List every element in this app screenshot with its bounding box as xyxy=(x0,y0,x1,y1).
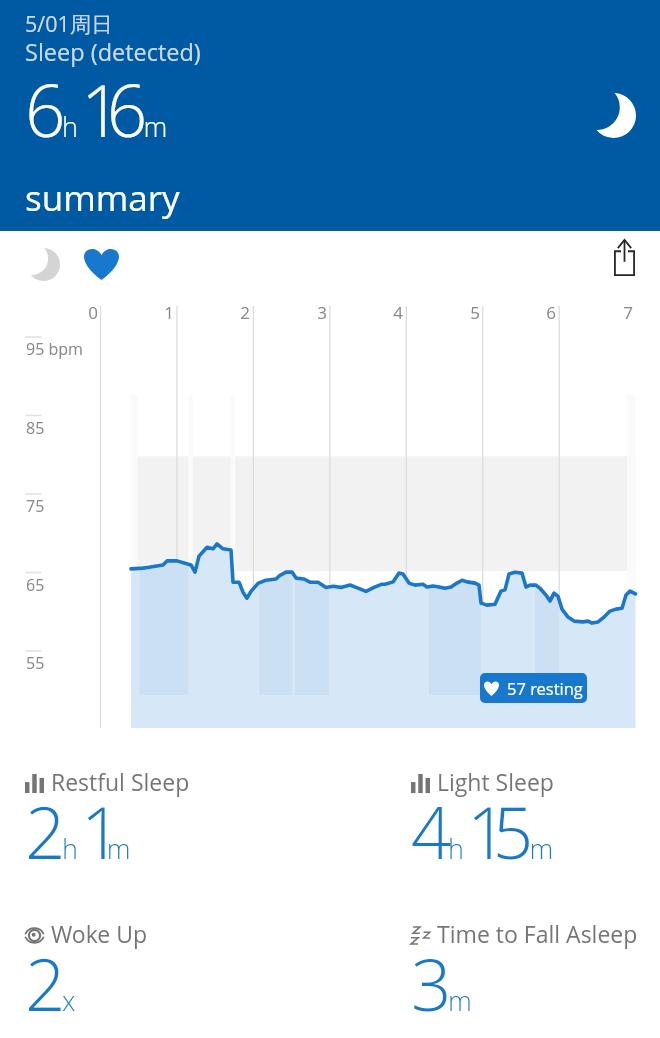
staticText: 0 xyxy=(72,301,98,324)
staticText: 55 xyxy=(26,652,45,674)
staticText: Woke Up xyxy=(51,918,148,949)
staticText: 3m xyxy=(411,935,472,1032)
button[interactable]: 57 resting xyxy=(480,673,587,703)
staticText: 65 xyxy=(26,574,45,596)
staticText: 3 xyxy=(301,301,327,324)
staticText: 6h 16m xyxy=(25,61,168,158)
staticText: 75 xyxy=(26,495,45,517)
staticText: 95 bpm xyxy=(26,338,83,360)
staticText: 5 xyxy=(454,301,480,324)
button[interactable]: Woke Up xyxy=(25,918,148,1038)
staticText: 2 xyxy=(224,301,250,324)
staticText: 6 xyxy=(530,301,556,324)
staticText: 1 xyxy=(148,301,174,324)
staticText: 4 xyxy=(377,301,403,324)
button[interactable]: Sleep xyxy=(14,233,70,289)
staticText: summary xyxy=(25,174,180,222)
button[interactable]: Share xyxy=(590,231,646,287)
button[interactable]: Light Sleep xyxy=(411,766,554,894)
button[interactable]: Restful Sleep xyxy=(25,766,190,894)
staticText: 57 resting xyxy=(507,677,583,699)
staticText: Light Sleep xyxy=(437,766,554,797)
staticText: 7 xyxy=(607,301,633,324)
staticText: Restful Sleep xyxy=(51,766,190,797)
button[interactable]: Time to Fall Asleep xyxy=(411,918,638,1038)
staticText: 85 xyxy=(26,417,45,439)
staticText: 5/01周日 xyxy=(25,9,113,38)
button[interactable]: Heart rate xyxy=(70,233,126,289)
staticText: 4h 15m xyxy=(411,783,554,880)
staticText: 2h 1m xyxy=(25,783,131,880)
staticText: 2x xyxy=(25,935,76,1032)
staticText: Time to Fall Asleep xyxy=(437,918,638,949)
staticText: Sleep (detected) xyxy=(25,36,201,68)
